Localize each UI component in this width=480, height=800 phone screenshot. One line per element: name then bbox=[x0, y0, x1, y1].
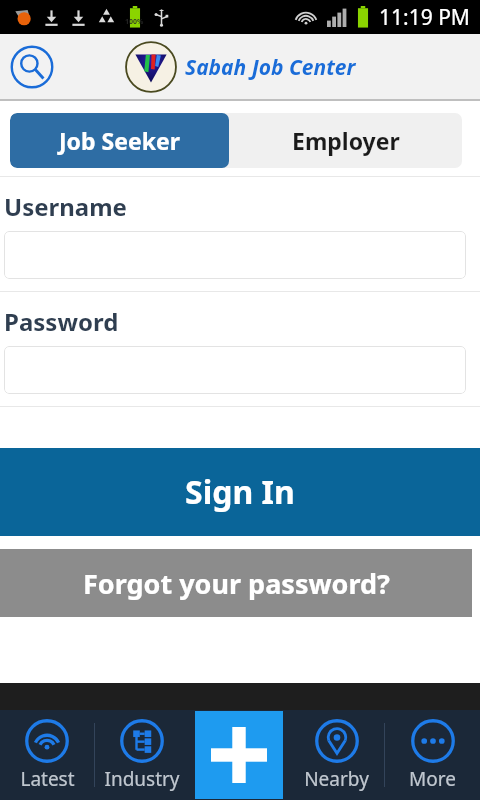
staticText: Nearby bbox=[304, 766, 369, 792]
button[interactable]: Add bbox=[189, 710, 289, 800]
button[interactable] bbox=[4, 231, 466, 279]
staticText: Job Seeker bbox=[59, 125, 180, 156]
button[interactable]: Sign In bbox=[0, 448, 480, 536]
button[interactable]: Search bbox=[7, 42, 57, 92]
button[interactable]: Latest bbox=[0, 710, 94, 800]
staticText: Username bbox=[4, 190, 127, 223]
button[interactable]: Nearby bbox=[289, 710, 384, 800]
staticText: Password bbox=[4, 305, 119, 338]
button[interactable] bbox=[4, 346, 466, 394]
staticText: Sign In bbox=[185, 470, 295, 514]
button[interactable]: Industry bbox=[95, 710, 189, 800]
staticText: Employer bbox=[292, 125, 400, 156]
button[interactable]: Job Seeker bbox=[10, 113, 229, 168]
button[interactable]: Forgot your password? bbox=[0, 549, 472, 617]
staticText: 11:19 PM bbox=[379, 3, 470, 32]
staticText: Sabah Job Center bbox=[185, 53, 356, 82]
button[interactable]: More bbox=[385, 710, 480, 800]
button[interactable]: Employer bbox=[229, 113, 462, 168]
staticText: Forgot your password? bbox=[83, 565, 390, 602]
staticText: Latest bbox=[20, 766, 75, 792]
staticText: 100% bbox=[125, 17, 144, 27]
staticText: Industry bbox=[104, 766, 180, 792]
staticText: More bbox=[409, 766, 456, 792]
